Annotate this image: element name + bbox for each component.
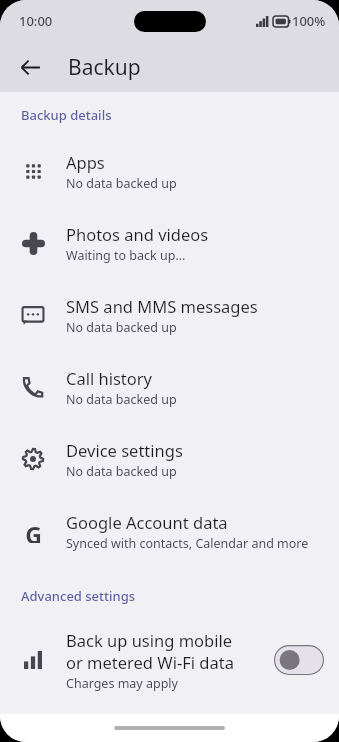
staticText: or metered Wi-Fi data (66, 651, 234, 673)
staticText: Advanced settings (21, 587, 136, 605)
staticText: Synced with contacts, Calendar and more (66, 535, 309, 552)
staticText: 10:00 (19, 12, 53, 30)
staticText: Charges may apply (66, 675, 178, 692)
staticText: No data backed up (66, 463, 177, 480)
button[interactable]: Apps (0, 135, 339, 207)
staticText: No data backed up (66, 319, 177, 336)
other: Apps (18, 156, 48, 186)
button[interactable]: Back (8, 45, 52, 89)
staticText: G (25, 519, 42, 543)
staticText: No data backed up (66, 175, 177, 192)
staticText: SMS and MMS messages (66, 295, 258, 317)
button[interactable]: Back up using mobile or metered Wi-Fi da… (274, 645, 324, 675)
button[interactable]: Device settings (0, 423, 339, 495)
staticText: Device settings (66, 439, 183, 461)
staticText: Backup details (21, 106, 112, 124)
staticText: Photos and videos (66, 223, 209, 245)
staticText: Backup (68, 53, 141, 82)
other: Device settings (18, 444, 48, 474)
staticText: Waiting to back up… (66, 247, 186, 264)
staticText: Call history (66, 367, 153, 389)
button[interactable]: Messages (0, 279, 339, 351)
button[interactable]: Google Account data (0, 495, 339, 567)
other: Call history (18, 372, 48, 402)
button[interactable]: Photos and videos (0, 207, 339, 279)
other: Messages (18, 300, 48, 330)
staticText: Apps (66, 151, 105, 173)
other: Mobile data (18, 645, 48, 675)
staticText: Back up using mobile (66, 629, 233, 651)
button[interactable]: Mobile data (0, 617, 339, 703)
other: Google Account data (18, 516, 48, 546)
staticText: Google Account data (66, 511, 228, 533)
button[interactable]: Call history (0, 351, 339, 423)
staticText: 100% (292, 12, 326, 30)
staticText: No data backed up (66, 391, 177, 408)
other: Photos and videos (18, 228, 48, 258)
